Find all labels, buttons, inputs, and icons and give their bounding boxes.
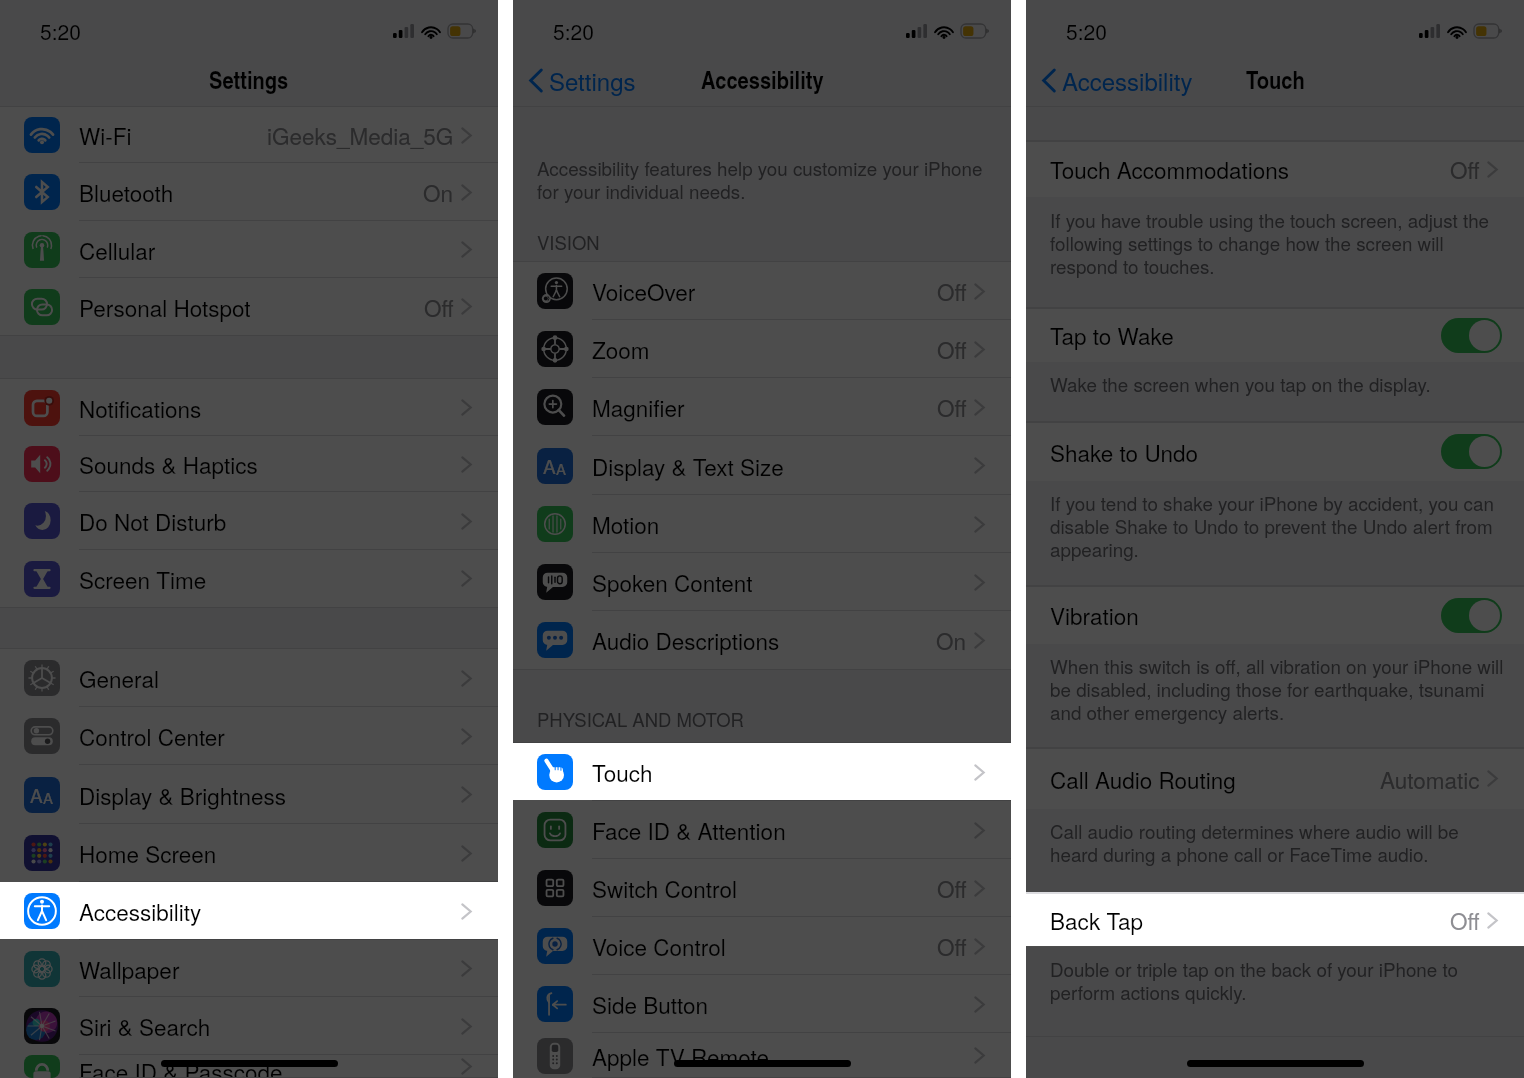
button[interactable]: Vibration toggle, on [1441, 598, 1502, 633]
button[interactable]: Screen Time [0, 550, 498, 607]
button[interactable]: Shake to Undo [1026, 422, 1524, 481]
staticText: Voice Control [592, 930, 937, 962]
staticText: Shake to Undo [1050, 436, 1441, 468]
staticText: PHYSICAL AND MOTOR [537, 706, 744, 732]
staticText: Off [937, 275, 967, 307]
button[interactable]: Touch [513, 743, 1011, 801]
button[interactable]: Switch Control [513, 859, 1011, 917]
staticText: Do Not Disturb [79, 505, 461, 537]
button[interactable]: Back to Settings [529, 63, 636, 97]
button[interactable]: Siri & Search [0, 997, 498, 1055]
button[interactable]: Motion [513, 495, 1011, 553]
button[interactable]: Touch Accommodations [1026, 141, 1524, 197]
button[interactable]: Apple TV Remote [513, 1033, 1011, 1078]
button[interactable]: Vibration [1026, 586, 1524, 644]
staticText: 5:20 [40, 16, 81, 46]
staticText: General [79, 662, 461, 694]
button[interactable]: Audio Descriptions [513, 611, 1011, 669]
staticText: Off [1450, 904, 1480, 936]
staticText: If you have trouble using the touch scre… [1050, 206, 1506, 279]
staticText: Switch Control [592, 872, 937, 904]
staticText: Screen Time [79, 563, 461, 595]
button[interactable]: Home Screen [0, 824, 498, 882]
staticText: Notifications [79, 392, 461, 424]
staticText: Apple TV Remote [592, 1040, 974, 1072]
staticText: Call audio routing determines where audi… [1050, 817, 1506, 867]
staticText: Double or triple tap on the back of your… [1050, 955, 1506, 1005]
staticText: Siri & Search [79, 1010, 461, 1042]
staticText: Off [1450, 153, 1480, 185]
staticText: A [543, 452, 556, 479]
staticText: Bluetooth [79, 176, 423, 208]
staticText: Off [424, 291, 454, 323]
staticText: Accessibility [1062, 63, 1193, 97]
staticText: Wake the screen when you tap on the disp… [1050, 370, 1431, 397]
staticText: Wallpaper [79, 953, 461, 985]
staticText: Accessibility [701, 62, 824, 97]
button[interactable]: Magnifier [513, 378, 1011, 436]
button[interactable]: Face ID & Passcode [0, 1055, 498, 1078]
staticText: On [423, 176, 454, 208]
staticText: Spoken Content [592, 566, 974, 598]
button[interactable]: Do Not Disturb [0, 492, 498, 550]
button[interactable]: A [0, 765, 498, 824]
button[interactable]: Zoom [513, 320, 1011, 378]
staticText: A [43, 787, 54, 808]
staticText: Off [937, 872, 967, 904]
staticText: Tap to Wake [1050, 319, 1441, 351]
staticText: Touch [592, 756, 974, 788]
button[interactable]: A [513, 436, 1011, 495]
button[interactable]: Back to Accessibility [1042, 63, 1193, 97]
button[interactable]: Wi-Fi [0, 107, 498, 163]
staticText: Face ID & Passcode [79, 1055, 461, 1078]
staticText: Audio Descriptions [592, 624, 936, 656]
staticText: Motion [592, 508, 974, 540]
staticText: Automatic [1380, 763, 1480, 795]
staticText: 5:20 [553, 16, 594, 46]
staticText: Sounds & Haptics [79, 448, 461, 480]
staticText: Vibration [1050, 599, 1441, 631]
button[interactable]: Voice Control [513, 917, 1011, 975]
staticText: Off [937, 391, 967, 423]
staticText: Display & Brightness [79, 779, 461, 811]
staticText: When this switch is off, all vibration o… [1050, 652, 1506, 725]
staticText: A [556, 458, 567, 479]
staticText: Accessibility [79, 895, 461, 927]
button[interactable]: Cellular [0, 221, 498, 278]
button[interactable]: Back Tap [1026, 893, 1524, 947]
staticText: VISION [537, 229, 600, 255]
staticText: Back Tap [1050, 904, 1450, 936]
button[interactable]: Bluetooth [0, 163, 498, 221]
staticText: Accessibility features help you customiz… [537, 154, 1003, 203]
staticText: Wi-Fi [79, 119, 267, 151]
button[interactable]: VoiceOver [513, 262, 1011, 320]
button[interactable]: Tap to Wake [1026, 308, 1524, 362]
staticText: Magnifier [592, 391, 937, 423]
button[interactable]: Spoken Content [513, 553, 1011, 611]
staticText: Zoom [592, 333, 937, 365]
button[interactable]: Personal Hotspot [0, 278, 498, 335]
button[interactable]: Tap to Wake toggle, on [1441, 318, 1502, 353]
button[interactable]: General [0, 649, 498, 707]
button[interactable]: Call Audio Routing [1026, 748, 1524, 809]
staticText: Off [937, 930, 967, 962]
staticText: 5:20 [1066, 16, 1107, 46]
staticText: Touch [1246, 62, 1305, 97]
staticText: A [30, 781, 43, 808]
staticText: On [936, 624, 967, 656]
staticText: Personal Hotspot [79, 291, 424, 323]
staticText: Call Audio Routing [1050, 763, 1380, 795]
staticText: Display & Text Size [592, 450, 974, 482]
button[interactable]: Control Center [0, 707, 498, 765]
button[interactable]: Side Button [513, 975, 1011, 1033]
staticText: Touch Accommodations [1050, 153, 1450, 185]
button[interactable]: Shake to Undo toggle, on [1441, 434, 1502, 469]
button[interactable]: Sounds & Haptics [0, 436, 498, 492]
button[interactable]: Wallpaper [0, 940, 498, 997]
button[interactable]: Face ID & Attention [513, 801, 1011, 859]
button[interactable]: Accessibility [0, 882, 498, 940]
button[interactable]: Notifications [0, 379, 498, 436]
staticText: Home Screen [79, 837, 461, 869]
staticText: VoiceOver [592, 275, 937, 307]
staticText: Settings [549, 63, 636, 97]
